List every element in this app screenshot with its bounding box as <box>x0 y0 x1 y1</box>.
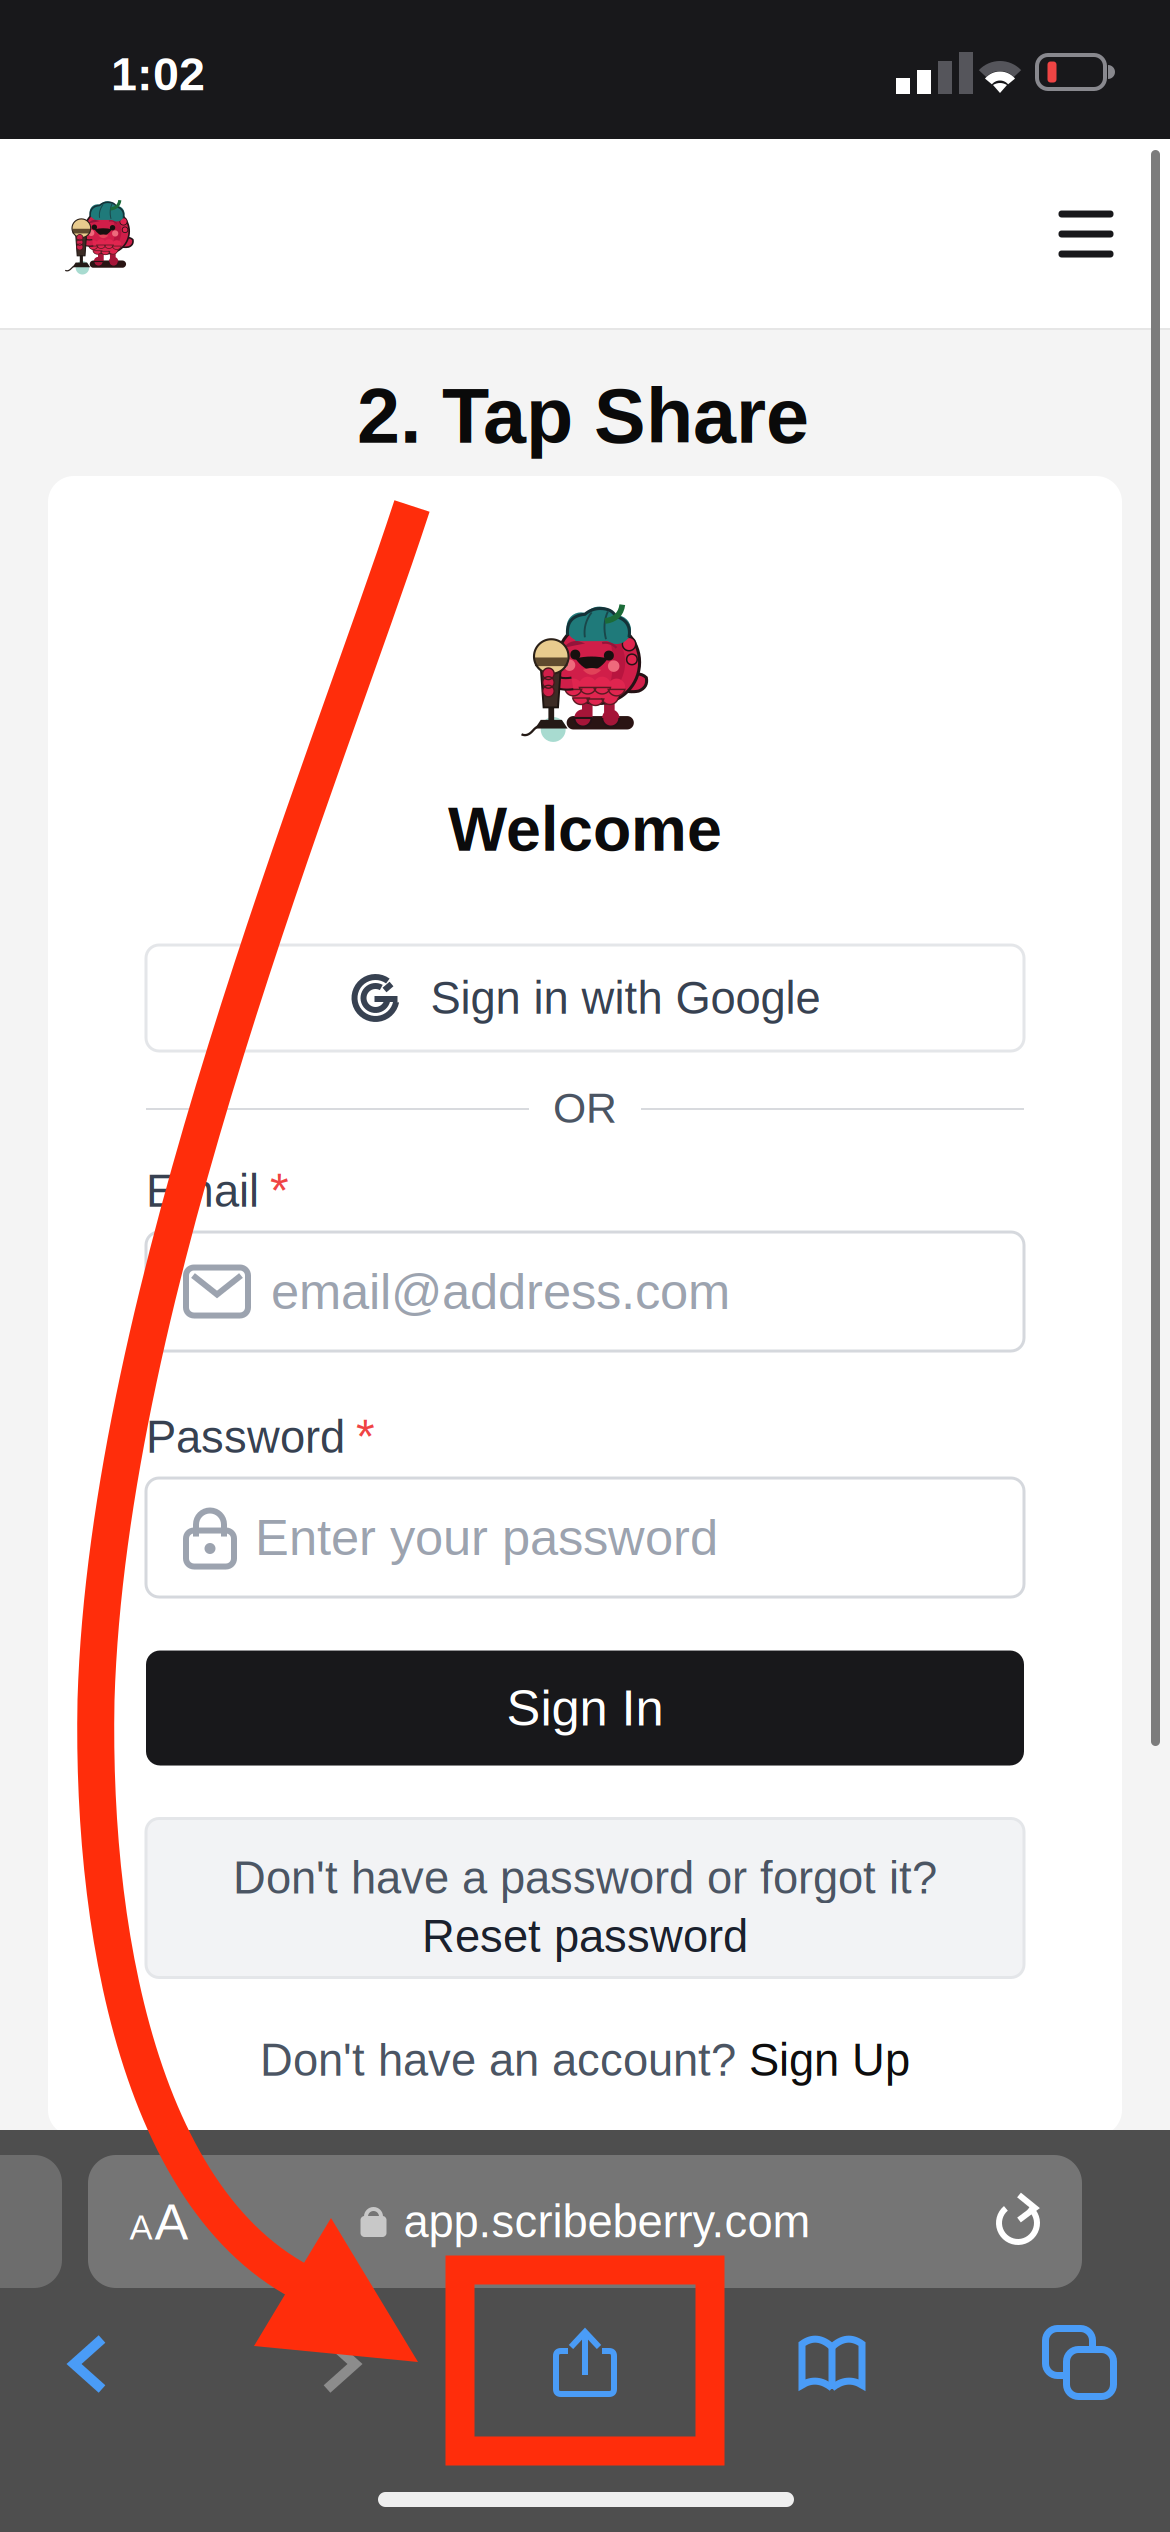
button[interactable]: Scribeberry home <box>44 186 152 284</box>
staticText: Enter your password <box>255 1509 718 1566</box>
staticText: Reset password <box>422 1911 748 1962</box>
staticText: Email <box>146 1166 259 1216</box>
button[interactable]: Menu <box>1041 189 1131 279</box>
staticText: 1:02 <box>111 48 205 100</box>
staticText: 2. Tap Share <box>357 373 809 459</box>
staticText: app.scribeberry.com <box>403 2196 810 2247</box>
staticText: A <box>129 2208 152 2247</box>
staticText: Password <box>146 1412 345 1462</box>
button[interactable]: Text size <box>94 2155 224 2288</box>
staticText: OR <box>553 1084 617 1132</box>
staticText: * <box>270 1163 289 1217</box>
staticText: Sign In <box>506 1680 663 1736</box>
button[interactable]: Back <box>24 2291 152 2437</box>
button[interactable]: Don't have an account? <box>146 2030 1024 2090</box>
staticText: email@address.com <box>271 1263 730 1320</box>
staticText: * <box>356 1409 375 1463</box>
button[interactable]: Tabs <box>1004 2287 1156 2439</box>
staticText: Don't have a password or forgot it? <box>233 1852 937 1903</box>
button[interactable]: Don't have a password or forgot it? <box>146 1818 1024 1977</box>
staticText: Welcome <box>448 794 722 864</box>
button[interactable]: Share <box>512 2287 658 2437</box>
staticText: Don't have an account? <box>260 2035 736 2085</box>
button[interactable]: Reload <box>968 2167 1072 2275</box>
button[interactable]: Sign in with Google <box>146 945 1024 1051</box>
staticText: Sign Up <box>749 2035 910 2085</box>
staticText: A <box>154 2194 188 2250</box>
button[interactable]: Bookmarks <box>758 2291 906 2433</box>
button[interactable]: Forward <box>277 2291 405 2437</box>
button[interactable]: Sign In <box>146 1650 1024 1765</box>
staticText: Sign in with Google <box>430 973 820 1023</box>
